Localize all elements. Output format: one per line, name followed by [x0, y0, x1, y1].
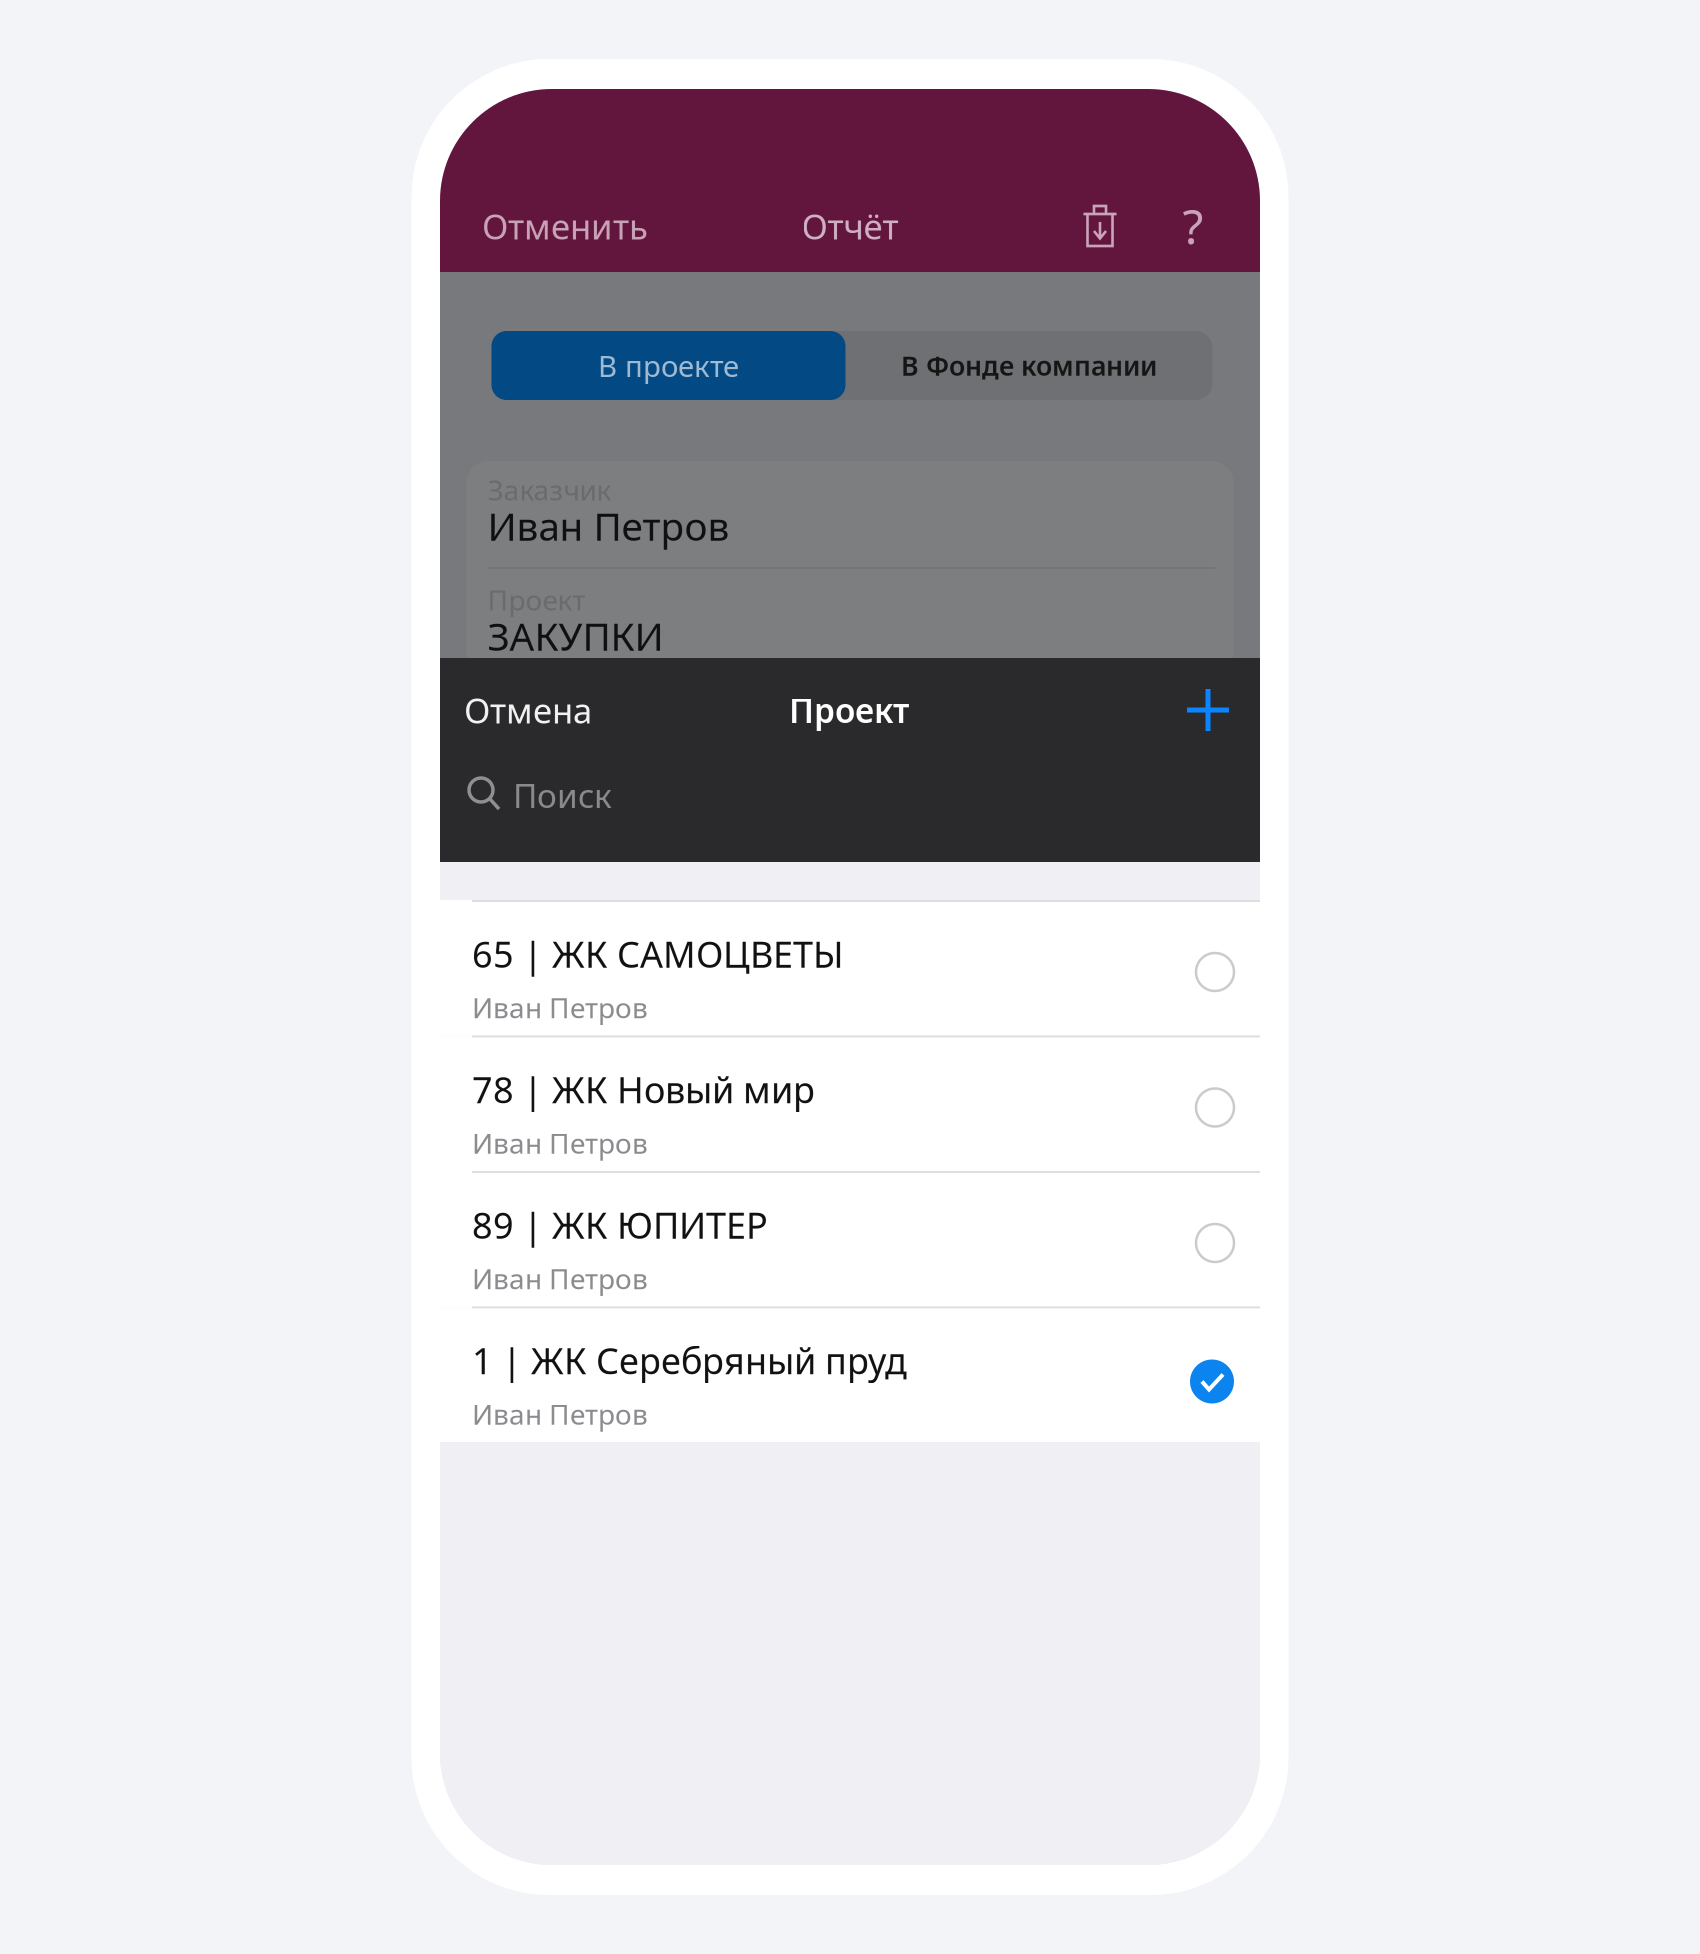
staticText: Поиск [513, 773, 612, 817]
staticText: Отчёт [801, 203, 898, 249]
button[interactable]: 65 | ЖК САМОЦВЕТЫ [440, 902, 1260, 1035]
button[interactable]: 1 | ЖК Серебряный пруд [440, 1308, 1260, 1442]
button[interactable]: Help [1173, 194, 1213, 258]
staticText: ЗАКУПКИ [487, 610, 663, 661]
staticText: Заказчик [487, 471, 611, 508]
staticText: 78 | ЖК Новый мир [472, 1065, 815, 1113]
staticText: ? [1182, 194, 1203, 258]
staticText: Иван Петров [472, 1124, 648, 1161]
staticText: Иван Петров [487, 500, 729, 551]
button[interactable]: Add project [1185, 687, 1231, 733]
staticText: В Фонде компании [901, 348, 1157, 383]
button[interactable]: 78 | ЖК Новый мир [440, 1037, 1260, 1171]
button[interactable]: 89 | ЖК ЮПИТЕР [440, 1173, 1260, 1306]
staticText: 1 | ЖК Серебряный пруд [472, 1336, 907, 1384]
staticText: Проект [789, 688, 909, 732]
button[interactable]: Delete [1083, 201, 1117, 251]
staticText: Отменить [482, 203, 648, 249]
staticText: Иван Петров [472, 989, 648, 1026]
staticText: Проект [487, 581, 585, 618]
button[interactable]: Отменить [482, 203, 648, 249]
button[interactable]: Отмена [464, 687, 592, 733]
staticText: В проекте [598, 346, 739, 385]
staticText: 89 | ЖК ЮПИТЕР [472, 1201, 768, 1249]
staticText: Отмена [464, 687, 592, 733]
staticText: Иван Петров [472, 1260, 648, 1297]
staticText: 65 | ЖК САМОЦВЕТЫ [472, 930, 844, 978]
staticText: Иван Петров [472, 1395, 648, 1432]
